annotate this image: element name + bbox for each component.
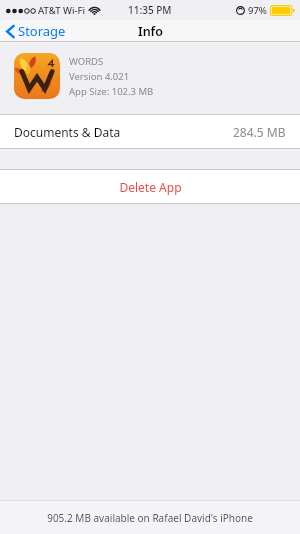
staticText: 11:35 PM <box>128 3 172 17</box>
staticText: Info <box>138 23 163 40</box>
staticText: App Size: 102.3 MB <box>69 85 154 98</box>
staticText: Version 4.021 <box>69 70 130 83</box>
button[interactable]: Storage <box>0 20 74 42</box>
staticText: Storage <box>18 22 66 40</box>
staticText: Documents & Data <box>14 124 121 140</box>
staticText: 284.5 MB <box>233 124 286 140</box>
button[interactable]: Delete App <box>0 170 300 203</box>
button[interactable]: Documents & Data <box>0 115 300 148</box>
staticText: Delete App <box>119 179 182 195</box>
staticText: AT&T Wi-Fi <box>38 4 86 17</box>
staticText: 97% <box>248 4 267 17</box>
staticText: WORDS <box>69 55 104 68</box>
staticText: 905.2 MB available on Rafael David's iPh… <box>47 511 253 525</box>
